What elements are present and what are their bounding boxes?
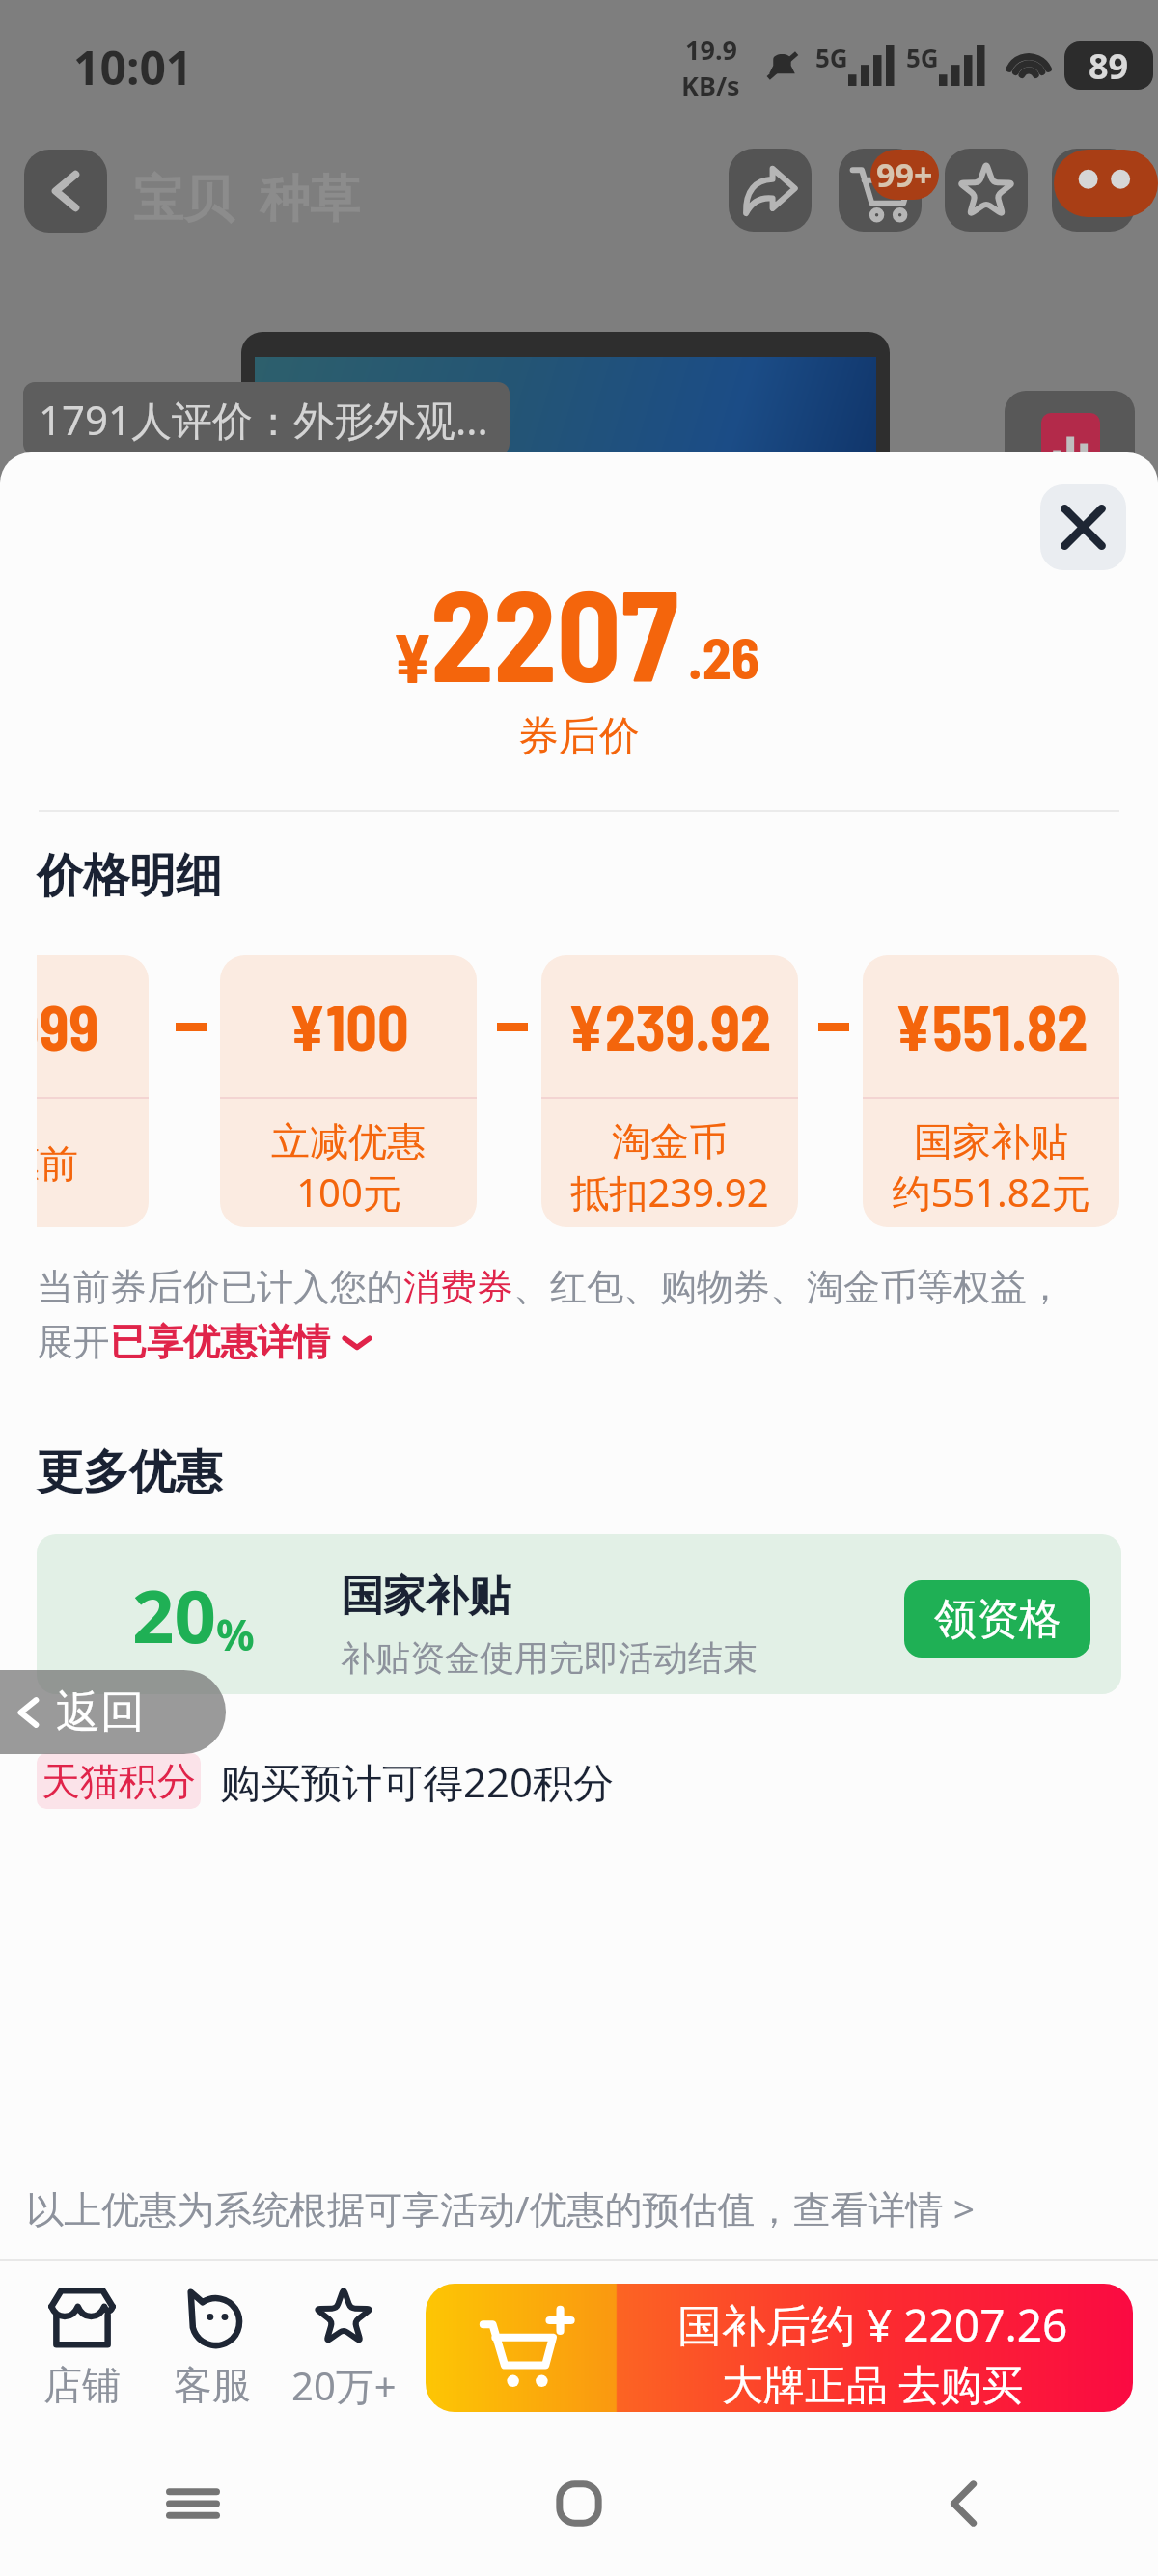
staticText: 国补后约 ¥ 2207.26: [677, 2294, 1068, 2355]
button[interactable]: 店铺: [14, 2261, 150, 2432]
staticText: 补贴资金使用完即活动结束: [341, 1636, 758, 1680]
staticText: 天猫积分: [41, 1757, 196, 1805]
staticText: 国家补贴: [914, 1117, 1068, 1165]
staticText: 2207: [430, 556, 678, 707]
staticText: 以上优惠为系统根据可享活动/优惠的预估值，查看详情 >: [26, 2182, 975, 2233]
staticText: 领资格: [934, 1593, 1061, 1646]
staticText: 国家补贴: [341, 1570, 510, 1623]
staticText: 店铺: [43, 2361, 121, 2409]
button[interactable]: ¥100: [220, 955, 477, 1227]
button[interactable]: 领资格: [904, 1580, 1090, 1658]
staticText: 优惠前: [37, 1139, 78, 1188]
staticText: KB/s: [681, 68, 740, 99]
button[interactable]: ¥239.92: [541, 955, 798, 1227]
staticText: 89: [1089, 42, 1129, 90]
staticText: ¥551.82: [895, 989, 1089, 1063]
staticText: 20: [132, 1565, 216, 1665]
button[interactable]: ¥551.82: [863, 955, 1119, 1227]
staticText: 消费券: [403, 1264, 513, 1310]
button[interactable]: ¥2999: [37, 955, 149, 1227]
staticText: 当前券后价已计入您的: [37, 1264, 403, 1310]
staticText: ¥: [392, 616, 433, 697]
button[interactable]: Cart: [839, 149, 922, 232]
staticText: 更多优惠: [37, 1443, 222, 1501]
staticText: 抵扣239.92: [570, 1165, 769, 1219]
button[interactable]: 20万+: [276, 2261, 411, 2432]
staticText: ¥239.92: [567, 989, 772, 1063]
staticText: 价格明细: [37, 847, 222, 905]
button[interactable]: Recents: [158, 2469, 228, 2538]
staticText: 100元: [296, 1165, 401, 1219]
button[interactable]: 20: [37, 1534, 1121, 1694]
button[interactable]: Close: [1040, 484, 1126, 570]
staticText: 返回: [56, 1685, 145, 1740]
staticText: 、红包、购物券、淘金币等权益，: [513, 1264, 1063, 1310]
staticText: 99+: [876, 152, 933, 197]
staticText: 券后价: [518, 711, 640, 762]
staticText: 19.9: [685, 32, 737, 68]
staticText: 立减优惠: [271, 1117, 426, 1165]
button[interactable]: Back: [930, 2469, 1000, 2538]
staticText: 淘金币: [612, 1117, 728, 1165]
staticText: 5G: [906, 41, 939, 74]
staticText: %: [216, 1605, 255, 1663]
button[interactable]: Back: [24, 150, 107, 233]
button[interactable]: Share: [729, 149, 812, 232]
staticText: ¥100: [289, 989, 409, 1063]
staticText: .26: [688, 621, 760, 691]
staticText: 10:01: [73, 36, 193, 98]
staticText: 大牌正品 去购买: [722, 2355, 1024, 2412]
staticText: 购买预计可得220积分: [220, 1754, 615, 1809]
staticText: 客服: [174, 2361, 251, 2409]
button[interactable]: 国补后约 ¥ 2207.26: [426, 2284, 1133, 2412]
button[interactable]: Favorite: [945, 149, 1028, 232]
button[interactable]: Home: [544, 2469, 614, 2538]
staticText: 5G: [815, 41, 848, 74]
staticText: 宝贝 种草: [133, 162, 361, 231]
button[interactable]: More: [1052, 149, 1135, 232]
staticText: 1791人评价：外形外观...: [39, 392, 488, 447]
button[interactable]: 已享优惠详情: [110, 1319, 330, 1365]
staticText: ¥2999: [37, 989, 99, 1063]
staticText: 展开: [37, 1319, 110, 1365]
staticText: 20万+: [291, 2359, 397, 2412]
staticText: 约551.82元: [892, 1165, 1090, 1219]
button[interactable]: 客服: [145, 2261, 280, 2432]
button[interactable]: 返回: [0, 1670, 226, 1754]
